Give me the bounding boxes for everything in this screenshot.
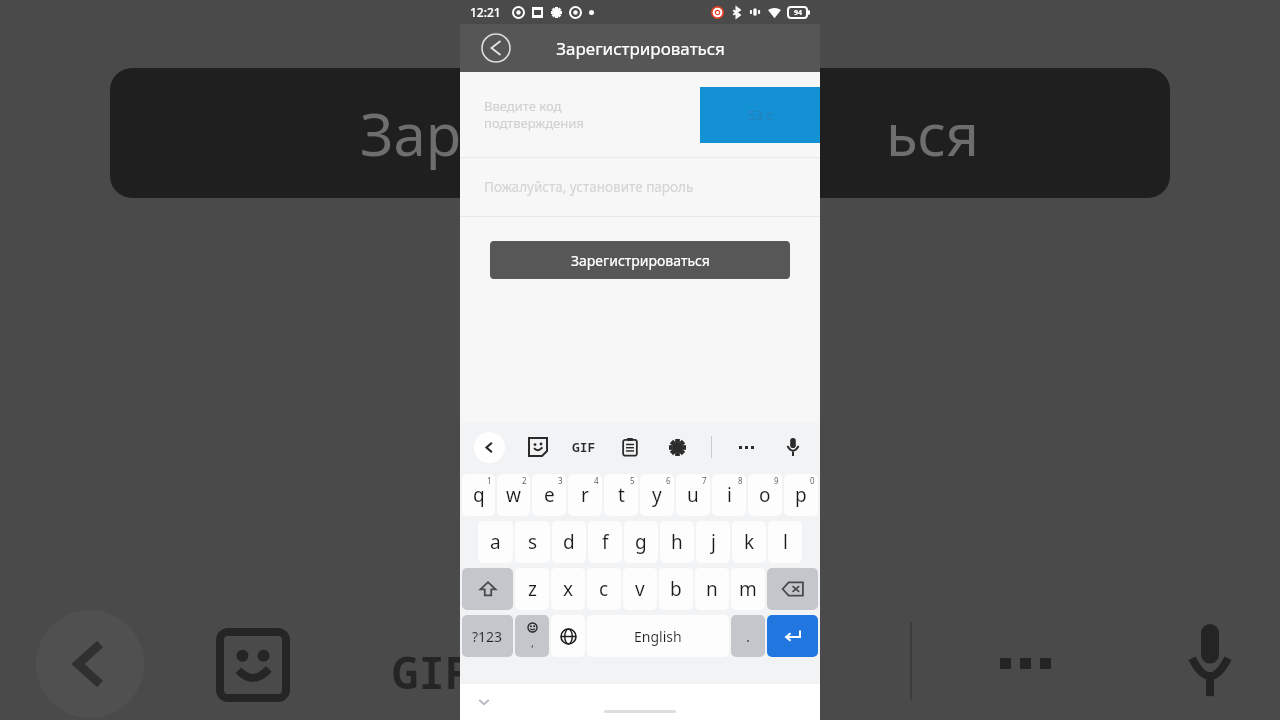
staticText: e: [544, 482, 555, 508]
button[interactable]: k: [732, 521, 766, 563]
staticText: o: [759, 482, 771, 508]
staticText: h: [671, 529, 683, 555]
button[interactable]: f: [588, 521, 622, 563]
staticText: 94: [794, 8, 803, 18]
button[interactable]: z: [515, 568, 549, 610]
staticText: q: [473, 482, 485, 508]
button[interactable]: .: [731, 615, 765, 657]
staticText: l: [783, 529, 788, 555]
button[interactable]: Change language: [551, 615, 585, 657]
staticText: r: [581, 482, 589, 508]
button[interactable]: c: [587, 568, 621, 610]
staticText: English: [634, 627, 682, 646]
button[interactable]: Backspace: [767, 568, 818, 610]
button[interactable]: Back: [480, 32, 512, 64]
button[interactable]: p: [784, 474, 818, 516]
staticText: Пожалуйста, установите пароль: [484, 178, 694, 196]
staticText: GIF: [572, 438, 596, 456]
staticText: 53 c: [748, 106, 773, 124]
staticText: c: [599, 576, 609, 602]
button[interactable]: w: [497, 474, 530, 516]
staticText: z: [528, 576, 537, 602]
staticText: g: [635, 529, 647, 555]
staticText: i: [727, 482, 732, 508]
staticText: 7: [702, 475, 707, 486]
button[interactable]: h: [660, 521, 694, 563]
button[interactable]: ?123: [462, 615, 513, 657]
staticText: n: [706, 576, 718, 602]
button[interactable]: m: [731, 568, 765, 610]
staticText: a: [490, 529, 501, 555]
button[interactable]: a: [478, 521, 513, 563]
staticText: j: [711, 529, 716, 555]
button[interactable]: s: [515, 521, 550, 563]
staticText: GIF: [392, 642, 472, 702]
button[interactable]: Settings: [664, 434, 690, 460]
button[interactable]: Voice input: [780, 434, 806, 460]
button[interactable]: q: [462, 474, 495, 516]
button[interactable]: v: [623, 568, 657, 610]
staticText: d: [563, 529, 575, 555]
button[interactable]: Enter: [767, 615, 818, 657]
staticText: m: [739, 576, 757, 602]
staticText: t: [618, 482, 625, 508]
staticText: 12:21: [470, 4, 501, 20]
staticText: Введите код подтверждения: [484, 97, 664, 132]
button[interactable]: GIF: [572, 438, 596, 456]
staticText: 2: [522, 475, 527, 486]
staticText: Зар: [360, 94, 461, 173]
button[interactable]: Shift: [462, 568, 513, 610]
button[interactable]: i: [712, 474, 746, 516]
button[interactable]: o: [748, 474, 782, 516]
staticText: w: [506, 482, 521, 508]
button[interactable]: Clipboard: [617, 434, 643, 460]
staticText: s: [528, 529, 538, 555]
staticText: ,: [531, 635, 534, 650]
staticText: 6: [666, 475, 671, 486]
staticText: .: [746, 626, 751, 646]
staticText: f: [602, 529, 609, 555]
staticText: b: [670, 576, 682, 602]
button[interactable]: l: [768, 521, 802, 563]
staticText: 4: [594, 475, 599, 486]
button[interactable]: Зарегистрироваться: [490, 241, 790, 279]
staticText: 3: [558, 475, 563, 486]
button[interactable]: Stickers: [525, 434, 551, 460]
staticText: u: [687, 482, 699, 508]
button[interactable]: Пожалуйста, установите пароль: [460, 158, 820, 216]
staticText: Зарегистрироваться: [571, 251, 710, 270]
button[interactable]: r: [568, 474, 602, 516]
staticText: x: [563, 576, 574, 602]
button[interactable]: e: [532, 474, 566, 516]
button[interactable]: u: [676, 474, 710, 516]
staticText: v: [635, 576, 645, 602]
staticText: k: [744, 529, 755, 555]
button[interactable]: More options: [733, 434, 759, 460]
button[interactable]: x: [551, 568, 585, 610]
staticText: 1: [487, 475, 492, 486]
staticText: 5: [630, 475, 635, 486]
staticText: ься: [886, 94, 980, 173]
staticText: ?123: [472, 627, 503, 646]
staticText: 0: [810, 475, 815, 486]
button[interactable]: y: [640, 474, 674, 516]
staticText: y: [652, 482, 662, 508]
button[interactable]: English: [587, 615, 729, 657]
button[interactable]: g: [624, 521, 658, 563]
button[interactable]: b: [659, 568, 693, 610]
button[interactable]: n: [695, 568, 729, 610]
button[interactable]: t: [604, 474, 638, 516]
staticText: Зарегистрироваться: [556, 37, 725, 60]
staticText: 8: [738, 475, 743, 486]
button[interactable]: j: [696, 521, 730, 563]
button[interactable]: Emoji and comma: [515, 615, 549, 657]
button[interactable]: Back: [474, 432, 505, 463]
button[interactable]: d: [552, 521, 586, 563]
staticText: p: [795, 482, 807, 508]
staticText: 9: [774, 475, 779, 486]
button[interactable]: Hide keyboard: [472, 690, 496, 714]
